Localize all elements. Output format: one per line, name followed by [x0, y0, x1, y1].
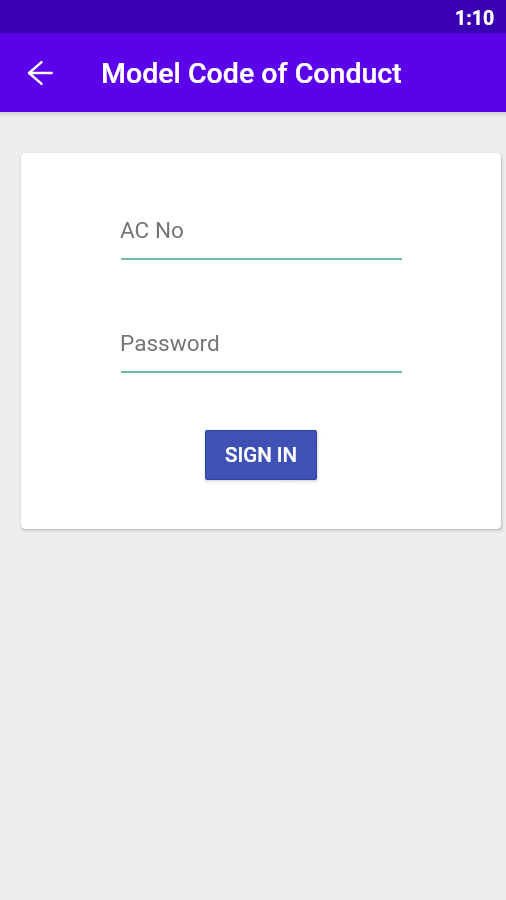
staticText: Model Code of Conduct — [101, 57, 402, 90]
button[interactable]: AC No — [121, 217, 402, 260]
button[interactable]: Password — [121, 330, 402, 373]
staticText: SIGN IN — [225, 443, 298, 467]
button[interactable]: Back — [16, 49, 64, 97]
staticText: AC No — [120, 217, 184, 243]
staticText: 1:10 — [455, 7, 495, 30]
staticText: Password — [120, 330, 220, 356]
button[interactable]: SIGN IN — [205, 430, 317, 480]
